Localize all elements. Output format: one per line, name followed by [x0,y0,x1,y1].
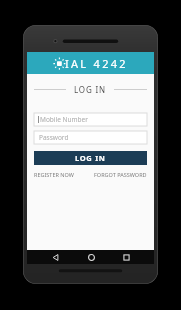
button[interactable]: REGISTER NOW [34,171,74,178]
staticText: Password [39,133,69,142]
staticText: REGISTER NOW [34,171,74,178]
staticText: IAL 4242 [65,56,128,71]
staticText: FORGOT PASSWORD [94,171,147,178]
other: Dial 4242 logo [54,58,65,69]
staticText: LOG IN [74,84,106,95]
button[interactable]: FORGOT PASSWORD [94,171,147,178]
staticText: Mobile Number [40,115,88,124]
button[interactable]: Mobile Number [34,113,147,126]
button[interactable]: Recent apps [119,250,133,264]
button[interactable]: Home [84,250,98,264]
staticText: LOG IN [75,153,106,163]
button[interactable]: Password [34,131,147,144]
button[interactable]: Back [48,250,62,264]
button[interactable]: LOG IN [34,151,147,165]
